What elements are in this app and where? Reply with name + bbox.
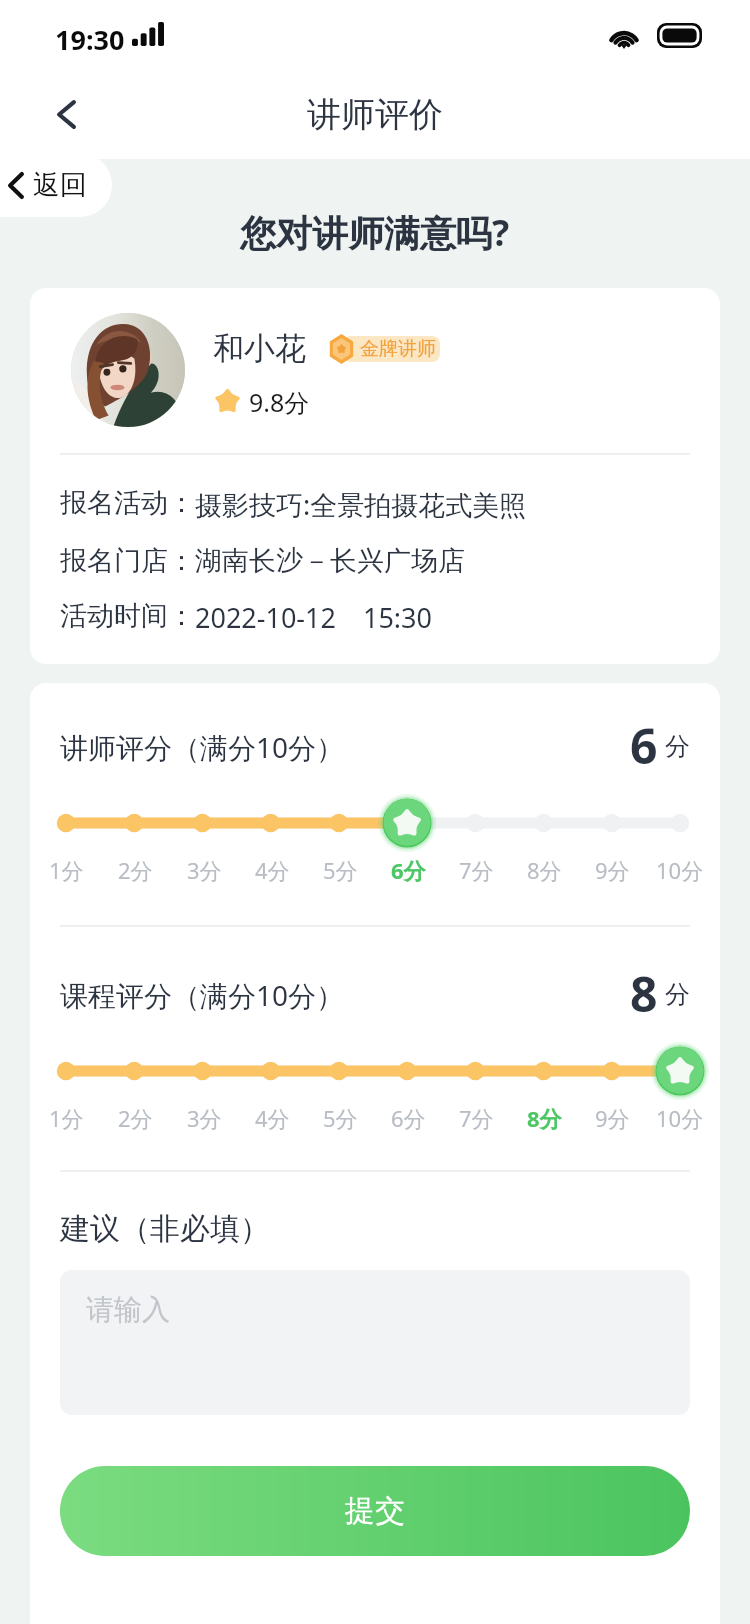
staticText: 3分 — [187, 1103, 222, 1133]
staticText: 建议（非必填） — [60, 1210, 270, 1248]
staticText: 报名门店： — [60, 544, 195, 578]
button[interactable]: 提交 — [60, 1466, 690, 1556]
staticText: 9分 — [595, 1103, 630, 1133]
button[interactable]: 请输入 — [60, 1270, 690, 1415]
staticText: 5分 — [323, 855, 358, 885]
staticText: 8分 — [527, 1103, 562, 1133]
staticText: 4分 — [255, 1103, 290, 1133]
staticText: 2分 — [118, 855, 153, 885]
staticText: 提交 — [345, 1492, 405, 1530]
button[interactable]: 返回 — [0, 153, 112, 217]
staticText: 请输入 — [86, 1292, 170, 1327]
staticText: 摄影技巧:全景拍摄花式美照 — [195, 486, 527, 523]
staticText: 6分 — [391, 855, 426, 885]
staticText: 19:30 — [55, 21, 125, 58]
button[interactable]: Rating slider — [60, 796, 690, 850]
staticText: 2022-10-12 15:30 — [195, 599, 432, 636]
staticText: 和小花 — [213, 329, 306, 368]
staticText: 课程评分（满分10分） — [60, 976, 345, 1014]
staticText: 2分 — [118, 1103, 153, 1133]
staticText: 7分 — [459, 855, 494, 885]
staticText: 1分 — [49, 855, 84, 885]
staticText: 您对讲师满意吗? — [240, 208, 510, 257]
staticText: 4分 — [255, 855, 290, 885]
staticText: 10分 — [656, 1103, 704, 1133]
staticText: 10分 — [656, 855, 704, 885]
staticText: 5分 — [323, 1103, 358, 1133]
staticText: 活动时间： — [60, 599, 195, 633]
staticText: 6 — [630, 713, 658, 778]
staticText: 金牌讲师 — [360, 337, 436, 361]
staticText: 湖南长沙－长兴广场店 — [195, 544, 465, 578]
staticText: 7分 — [459, 1103, 494, 1133]
staticText: 讲师评分（满分10分） — [60, 728, 345, 766]
button[interactable]: Rating slider — [60, 1044, 690, 1098]
staticText: 分 — [665, 731, 690, 762]
staticText: 讲师评价 — [307, 93, 443, 136]
staticText: 8 — [630, 961, 658, 1026]
staticText: 分 — [665, 979, 690, 1010]
staticText: 8分 — [527, 855, 562, 885]
staticText: 3分 — [187, 855, 222, 885]
staticText: 1分 — [49, 1103, 84, 1133]
staticText: 6分 — [391, 1103, 426, 1133]
staticText: 报名活动： — [60, 486, 195, 520]
staticText: 返回 — [33, 168, 87, 202]
button[interactable]: Back — [34, 83, 98, 146]
staticText: 9分 — [595, 855, 630, 885]
staticText: 9.8分 — [249, 385, 310, 419]
